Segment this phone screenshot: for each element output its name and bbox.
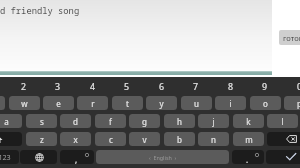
staticText: h [177, 116, 182, 127]
button[interactable]: Backspace [267, 132, 300, 146]
button[interactable]: z [26, 132, 57, 146]
button[interactable]: Comma [60, 150, 94, 164]
staticText: 2 [21, 81, 27, 91]
button[interactable]: h [164, 114, 195, 128]
staticText: x [73, 134, 78, 145]
staticText: 6 [159, 81, 165, 91]
button[interactable]: готово [279, 30, 300, 45]
staticText: 5 [124, 81, 130, 91]
staticText: n [211, 134, 216, 145]
button[interactable]: g [129, 114, 160, 128]
staticText: k [246, 116, 251, 127]
button[interactable]: t [112, 96, 143, 110]
button[interactable]: w [9, 96, 40, 110]
staticText: f [109, 116, 112, 127]
staticText: y [159, 98, 164, 109]
button[interactable]: f [95, 114, 126, 128]
button[interactable]: s [26, 114, 57, 128]
button[interactable]: i [215, 96, 246, 110]
staticText: 8 [228, 81, 234, 91]
staticText: ?123 [0, 152, 11, 162]
staticText: i [229, 98, 232, 109]
staticText: t [126, 98, 129, 109]
staticText: l [281, 116, 284, 127]
button[interactable]: Shift [0, 132, 22, 146]
button[interactable]: Period [232, 150, 264, 164]
staticText: d [73, 116, 78, 127]
staticText: . [246, 154, 249, 164]
staticText: d friendly song [0, 5, 80, 17]
button[interactable]: c [95, 132, 126, 146]
button[interactable]: d [60, 114, 91, 128]
button[interactable]: x [60, 132, 91, 146]
staticText: ‹ English › [149, 154, 177, 161]
staticText: 0 [297, 81, 300, 91]
button[interactable]: j [198, 114, 229, 128]
button[interactable]: e [43, 96, 74, 110]
staticText: r [91, 98, 95, 109]
button[interactable]: ‹ English › [96, 150, 229, 164]
button[interactable]: l [267, 114, 298, 128]
button[interactable]: o [250, 96, 281, 110]
staticText: g [142, 116, 147, 127]
button[interactable]: k [233, 114, 264, 128]
staticText: o [263, 98, 268, 109]
button[interactable]: n [198, 132, 229, 146]
staticText: a [4, 116, 9, 127]
staticText: 3 [55, 81, 61, 91]
button[interactable]: v [129, 132, 160, 146]
staticText: e [56, 98, 61, 109]
button[interactable]: r [77, 96, 108, 110]
button[interactable]: b [164, 132, 195, 146]
staticText: b [177, 134, 182, 145]
staticText: j [212, 116, 215, 127]
button[interactable]: q [0, 96, 5, 110]
button[interactable]: ?123 [0, 150, 19, 164]
button[interactable]: Change language [20, 150, 57, 164]
staticText: c [109, 134, 113, 145]
staticText: 4 [90, 81, 96, 91]
staticText: готово [283, 33, 300, 43]
button[interactable]: y [146, 96, 177, 110]
staticText: 7 [193, 81, 199, 91]
button[interactable]: a [0, 114, 22, 128]
button[interactable]: u [181, 96, 212, 110]
staticText: 9 [262, 81, 268, 91]
staticText: , [75, 154, 78, 164]
staticText: s [40, 116, 44, 127]
button[interactable]: m [233, 132, 264, 146]
button[interactable]: Enter [266, 150, 300, 164]
staticText: p [297, 98, 300, 109]
button[interactable]: p [284, 96, 300, 110]
staticText: w [21, 98, 28, 109]
staticText: u [194, 98, 199, 109]
staticText: z [40, 134, 44, 145]
staticText: m [245, 134, 253, 145]
staticText: v [142, 134, 147, 145]
